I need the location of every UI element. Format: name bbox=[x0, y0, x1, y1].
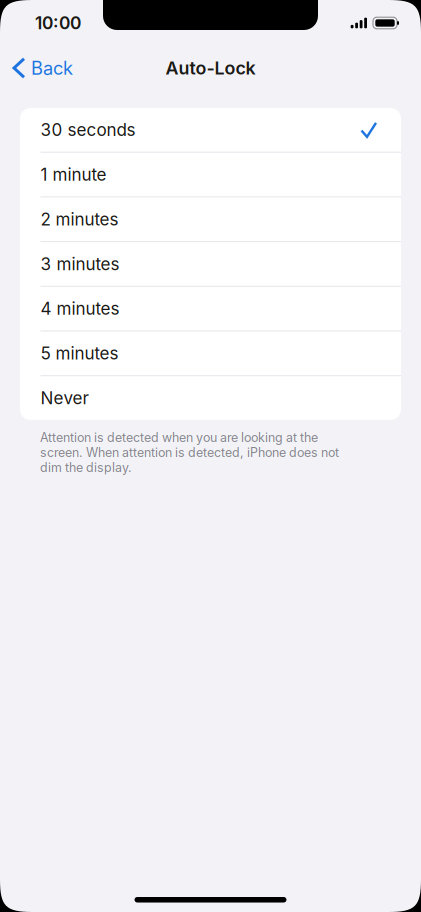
button[interactable]: 3 minutes bbox=[20, 242, 401, 286]
staticText: Never bbox=[40, 388, 88, 408]
button[interactable]: 30 seconds bbox=[20, 108, 401, 152]
button[interactable]: 2 minutes bbox=[20, 197, 401, 241]
staticText: 4 minutes bbox=[40, 298, 119, 319]
button[interactable]: Never bbox=[20, 376, 401, 420]
staticText: Back bbox=[31, 57, 73, 79]
staticText: 2 minutes bbox=[40, 209, 118, 229]
staticText: 30 seconds bbox=[40, 119, 135, 140]
staticText: 3 minutes bbox=[40, 254, 119, 274]
staticText: Auto-Lock bbox=[165, 57, 255, 79]
staticText: 10:00 bbox=[35, 12, 81, 33]
staticText: Attention is detected when you are looki… bbox=[40, 430, 339, 475]
button[interactable]: 5 minutes bbox=[20, 331, 401, 375]
button[interactable]: 1 minute bbox=[20, 153, 401, 196]
staticText: 5 minutes bbox=[40, 343, 118, 364]
staticText: 1 minute bbox=[40, 164, 106, 185]
button[interactable]: 4 minutes bbox=[20, 287, 401, 330]
button[interactable]: Back bbox=[14, 57, 73, 79]
